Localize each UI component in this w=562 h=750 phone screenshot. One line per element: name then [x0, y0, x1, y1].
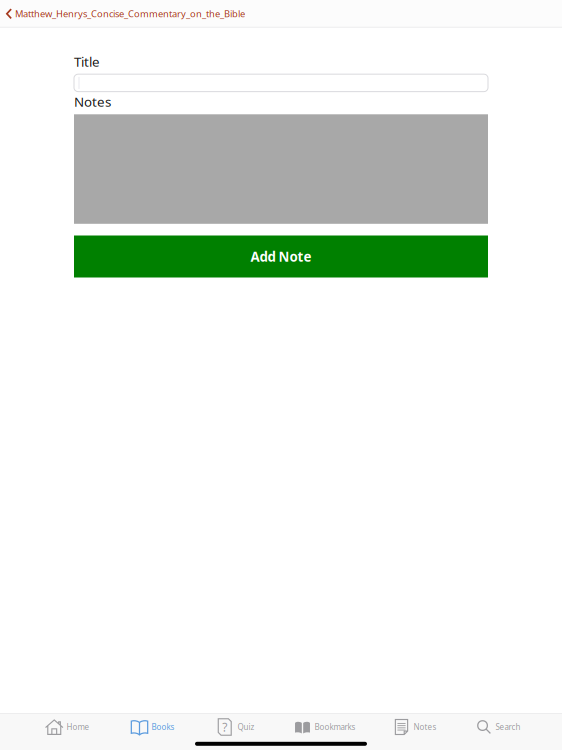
button[interactable]: Title [74, 74, 488, 92]
button[interactable]: Back to Matthew_Henrys_Concise_Commentar… [0, 0, 253, 27]
button[interactable]: Books [130, 715, 174, 739]
staticText: Add Note [250, 248, 311, 265]
staticText: Home [66, 722, 89, 732]
button[interactable]: Bookmarks [294, 715, 355, 739]
button[interactable]: Home [45, 715, 89, 739]
button[interactable]: Search [476, 715, 520, 739]
staticText: Notes [413, 722, 436, 732]
staticText: Books [151, 722, 174, 732]
button[interactable]: Notes [393, 715, 436, 739]
button[interactable]: Add Note [74, 235, 488, 277]
staticText: Bookmarks [314, 722, 355, 732]
staticText: Search [495, 722, 520, 732]
staticText: Title [74, 53, 100, 70]
staticText: Notes [74, 93, 111, 110]
staticText: Matthew_Henrys_Concise_Commentary_on_the… [15, 8, 245, 20]
staticText: Quiz [237, 722, 254, 732]
button[interactable]: ? [216, 715, 254, 739]
staticText: ? [222, 719, 227, 735]
